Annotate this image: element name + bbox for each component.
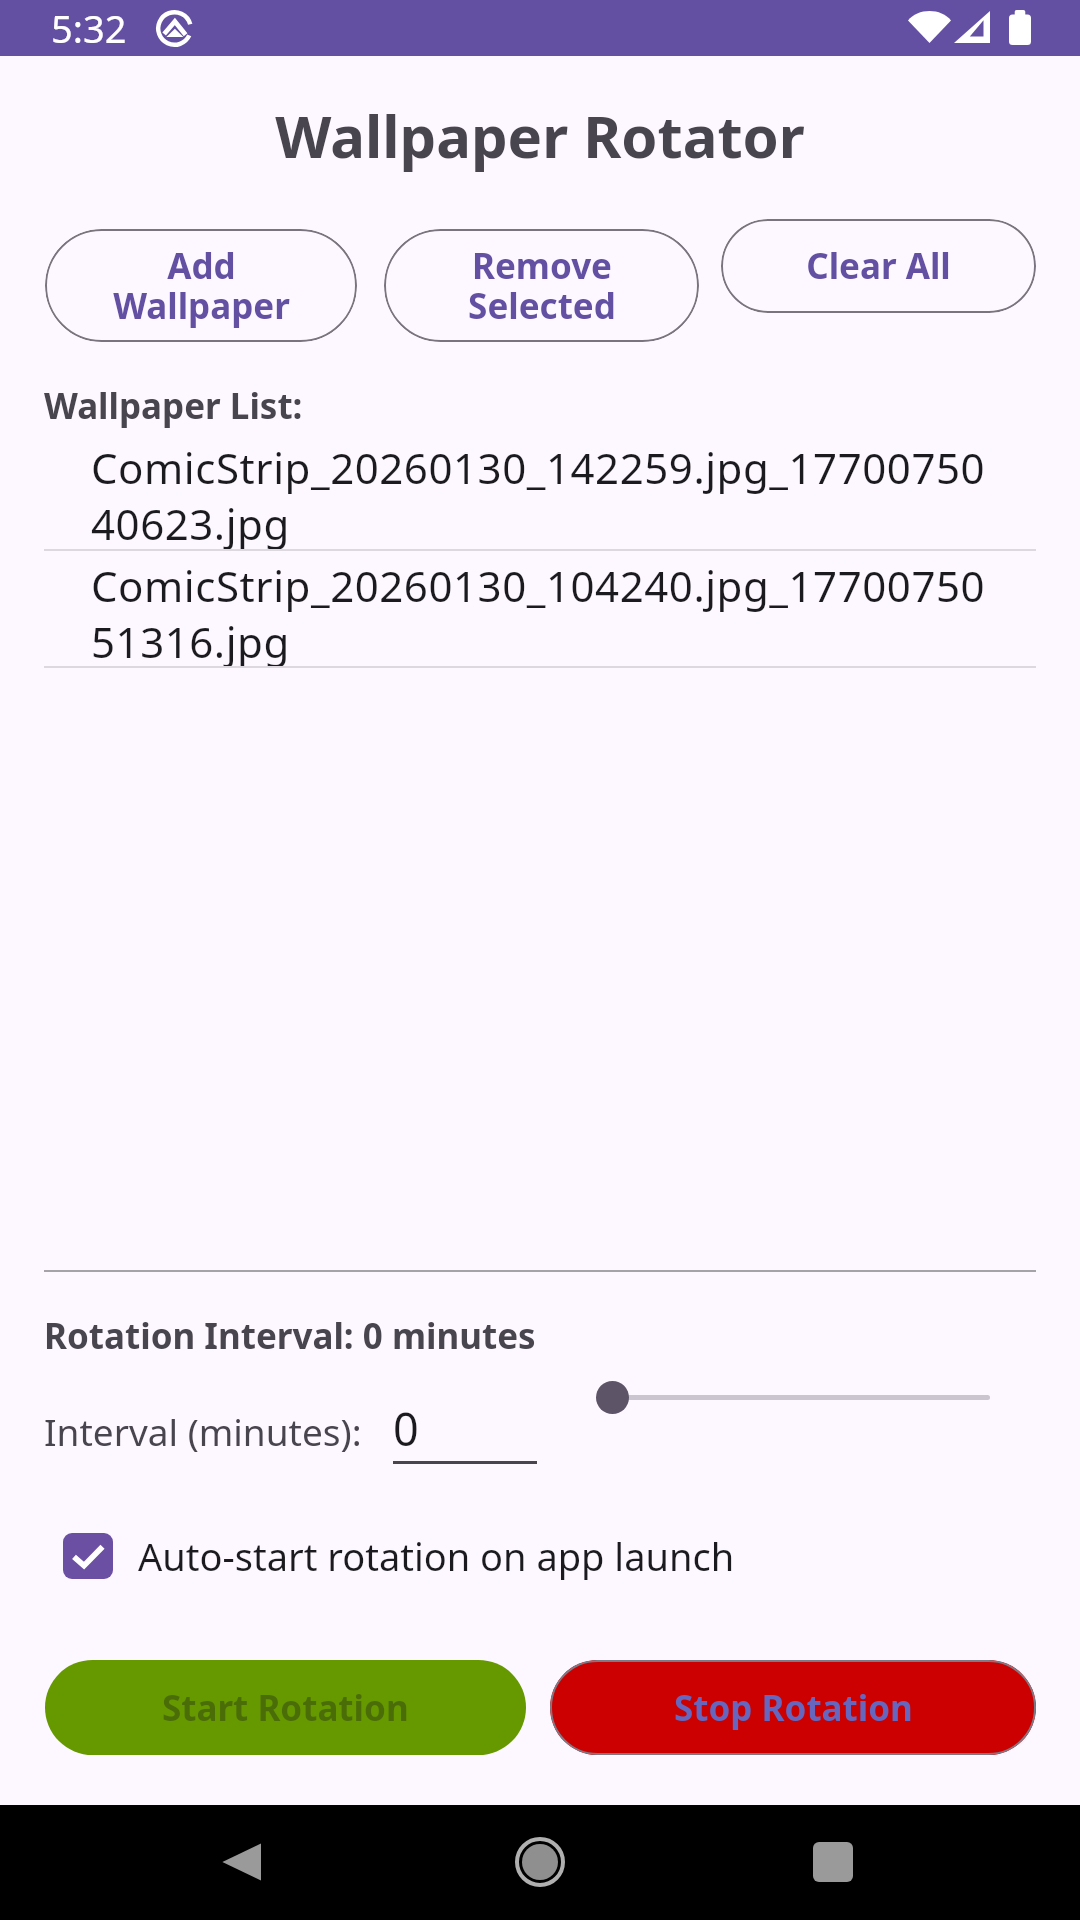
staticText: Wallpaper Rotator (0, 96, 1080, 175)
button[interactable]: Clear All (721, 219, 1036, 313)
staticText: Clear All (806, 242, 951, 290)
button[interactable]: Stop Rotation (550, 1660, 1036, 1755)
button[interactable]: Rotation interval slider (596, 1368, 996, 1426)
button[interactable]: ComicStrip_20260130_104240.jpg_177007505… (44, 557, 1036, 668)
staticText: Rotation Interval: 0 minutes (44, 1312, 536, 1360)
button[interactable]: Auto-start rotation on app launch (63, 1530, 735, 1582)
button[interactable]: Home (515, 1837, 565, 1887)
staticText: ComicStrip_20260130_104240.jpg_177007505… (91, 557, 1001, 668)
staticText: 0 (393, 1398, 419, 1459)
staticText: Remove Selected (468, 242, 616, 329)
button[interactable]: Back (219, 1841, 261, 1883)
staticText: Interval (minutes): (44, 1406, 362, 1456)
button[interactable]: Add Wallpaper (45, 229, 357, 342)
button[interactable]: Remove Selected (384, 229, 699, 342)
button[interactable]: Start Rotation (45, 1660, 526, 1755)
staticText: Start Rotation (162, 1684, 409, 1732)
staticText: Stop Rotation (674, 1684, 913, 1732)
staticText: Wallpaper List: (44, 382, 303, 430)
button[interactable]: ComicStrip_20260130_142259.jpg_177007504… (44, 439, 1036, 551)
staticText: 5:32 (51, 2, 127, 54)
button[interactable]: Recent apps (813, 1842, 853, 1882)
staticText: Add Wallpaper (113, 242, 290, 329)
staticText: Auto-start rotation on app launch (138, 1530, 735, 1582)
staticText: ComicStrip_20260130_142259.jpg_177007504… (91, 439, 1001, 551)
